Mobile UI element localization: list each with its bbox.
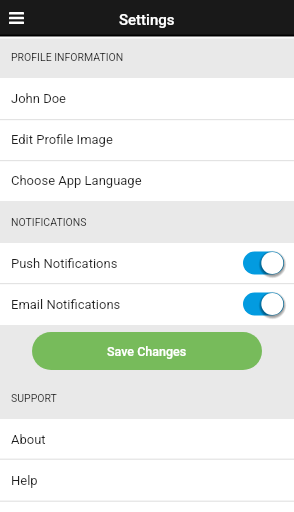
button[interactable]: Edit Profile Image bbox=[0, 119, 294, 160]
button[interactable]: On bbox=[243, 291, 285, 317]
staticText: About bbox=[11, 432, 46, 447]
staticText: Choose App Language bbox=[11, 173, 142, 188]
button[interactable]: John Doe bbox=[0, 78, 294, 119]
staticText: PROFILE INFORMATION bbox=[11, 51, 124, 63]
staticText: NOTIFICATIONS bbox=[11, 216, 87, 228]
staticText: Settings bbox=[119, 11, 175, 29]
staticText: SUPPORT bbox=[11, 392, 57, 404]
button[interactable]: Help bbox=[0, 460, 294, 501]
button[interactable]: Open navigation menu bbox=[0, 0, 33, 36]
button[interactable]: About bbox=[0, 419, 294, 460]
button[interactable]: On bbox=[243, 250, 285, 276]
button[interactable]: Email Notifications bbox=[0, 284, 294, 325]
staticText: Edit Profile Image bbox=[11, 132, 113, 147]
button[interactable]: Save Changes bbox=[32, 332, 262, 370]
staticText: Help bbox=[11, 473, 38, 488]
staticText: Push Notifications bbox=[11, 256, 118, 271]
button[interactable]: Choose App Language bbox=[0, 160, 294, 201]
button[interactable]: Push Notifications bbox=[0, 243, 294, 284]
staticText: Email Notifications bbox=[11, 297, 121, 312]
staticText: John Doe bbox=[11, 91, 66, 106]
staticText: Save Changes bbox=[107, 344, 187, 359]
